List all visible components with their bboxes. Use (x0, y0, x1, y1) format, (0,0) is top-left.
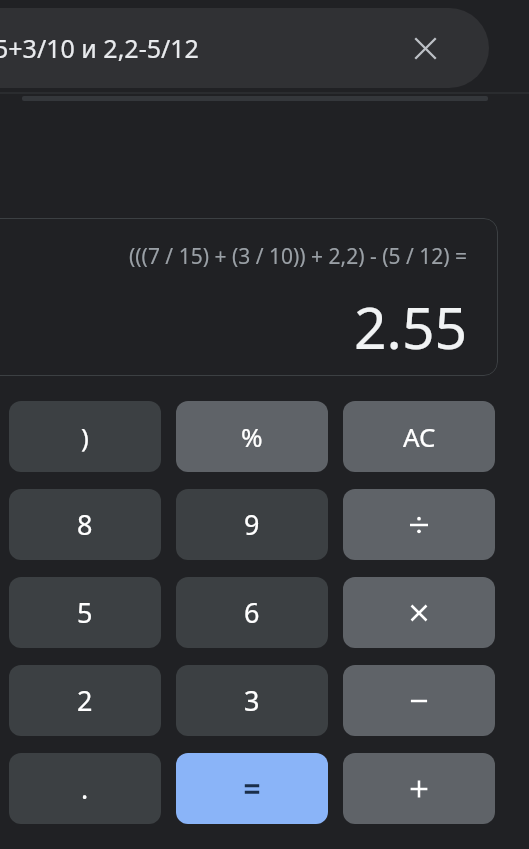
button[interactable]: Multiply (343, 577, 495, 648)
staticText: 3 (244, 682, 260, 719)
staticText: 6 (244, 594, 260, 631)
button[interactable]: Divide (343, 489, 495, 560)
button[interactable]: Minus (343, 665, 495, 736)
staticText: 5+3/10 и 2,2-5/12 (0, 31, 199, 65)
button[interactable]: % (176, 401, 328, 472)
button[interactable]: . (9, 753, 161, 824)
button[interactable]: 9 (176, 489, 328, 560)
staticText: (((7 / 15) + (3 / 10)) + 2,2) - (5 / 12)… (129, 242, 467, 271)
button[interactable]: Clear search (401, 24, 449, 72)
staticText: . (81, 770, 89, 807)
staticText: 8 (77, 506, 93, 543)
staticText: % (241, 419, 263, 454)
button[interactable]: 3 (176, 665, 328, 736)
button[interactable]: AC (343, 401, 495, 472)
button[interactable]: 5 (9, 577, 161, 648)
button[interactable]: ) (9, 401, 161, 472)
staticText: 9 (244, 506, 260, 543)
button[interactable]: Equals (176, 753, 328, 824)
staticText: ) (81, 419, 89, 454)
staticText: 2.55 (354, 288, 468, 366)
button[interactable]: 5+3/10 и 2,2-5/12 (0, 8, 489, 88)
button[interactable]: 8 (9, 489, 161, 560)
staticText: 5 (77, 594, 93, 631)
button[interactable]: 2 (9, 665, 161, 736)
staticText: AC (403, 419, 436, 454)
button[interactable]: Plus (343, 753, 495, 824)
button[interactable]: 6 (176, 577, 328, 648)
staticText: 2 (77, 682, 93, 719)
